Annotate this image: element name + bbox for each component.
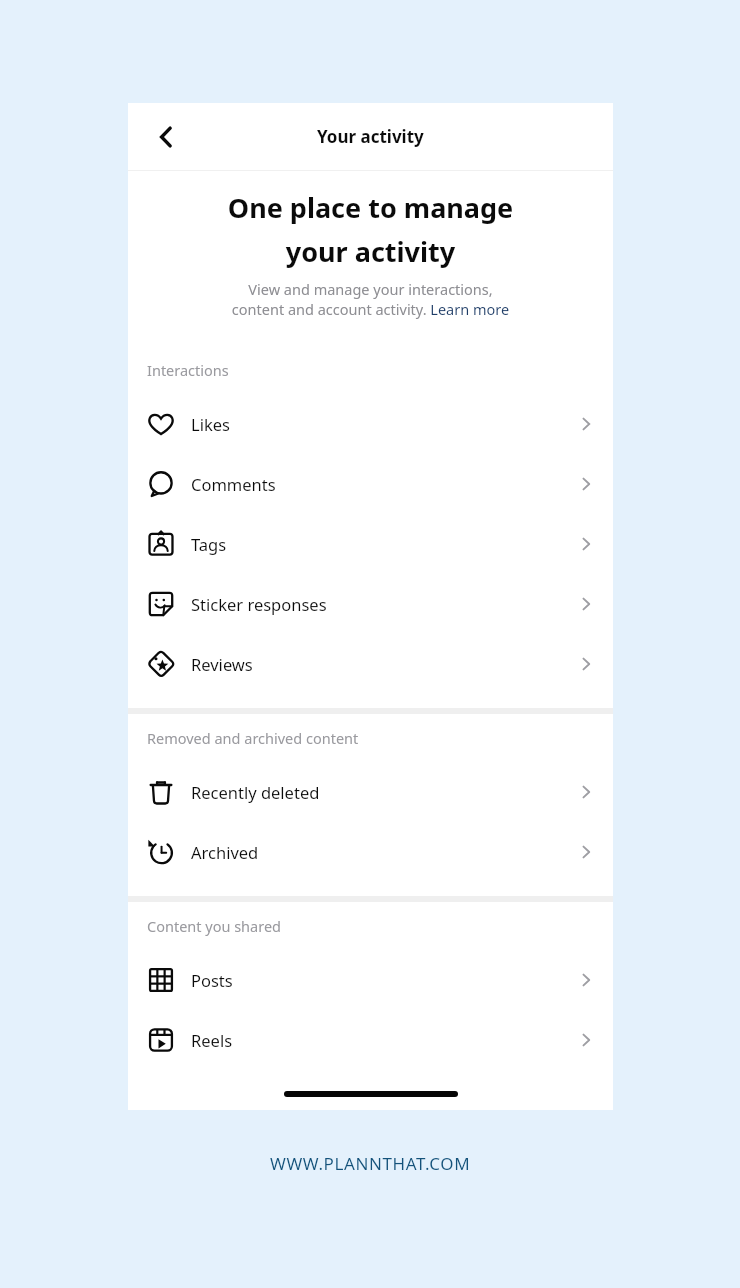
button[interactable]: Posts bbox=[128, 950, 613, 1010]
button[interactable]: Reviews bbox=[128, 634, 613, 694]
button[interactable]: Comments bbox=[128, 454, 613, 514]
staticText: Content you shared bbox=[147, 916, 282, 936]
staticText: Archived bbox=[191, 841, 259, 863]
button[interactable]: Back bbox=[138, 109, 194, 165]
staticText: WWW.PLANNTHAT.COM bbox=[270, 1152, 471, 1175]
button[interactable]: Likes bbox=[128, 394, 613, 454]
staticText: Tags bbox=[191, 533, 227, 555]
staticText: Comments bbox=[191, 473, 276, 495]
staticText: One place to manage your activity bbox=[152, 189, 589, 269]
staticText: Removed and archived content bbox=[147, 728, 359, 748]
staticText: Reels bbox=[191, 1029, 233, 1051]
staticText: Recently deleted bbox=[191, 781, 320, 803]
staticText: Your activity bbox=[317, 125, 424, 148]
staticText: Sticker responses bbox=[191, 593, 327, 615]
staticText: Likes bbox=[191, 413, 230, 435]
staticText: View and manage your interactions, conte… bbox=[146, 279, 595, 320]
button[interactable]: Sticker responses bbox=[128, 574, 613, 634]
button[interactable]: Recently deleted bbox=[128, 762, 613, 822]
button[interactable]: Archived bbox=[128, 822, 613, 882]
staticText: Interactions bbox=[147, 360, 229, 380]
staticText: Reviews bbox=[191, 653, 253, 675]
button[interactable]: Reels bbox=[128, 1010, 613, 1070]
button[interactable]: Tags bbox=[128, 514, 613, 574]
staticText: Posts bbox=[191, 969, 233, 991]
